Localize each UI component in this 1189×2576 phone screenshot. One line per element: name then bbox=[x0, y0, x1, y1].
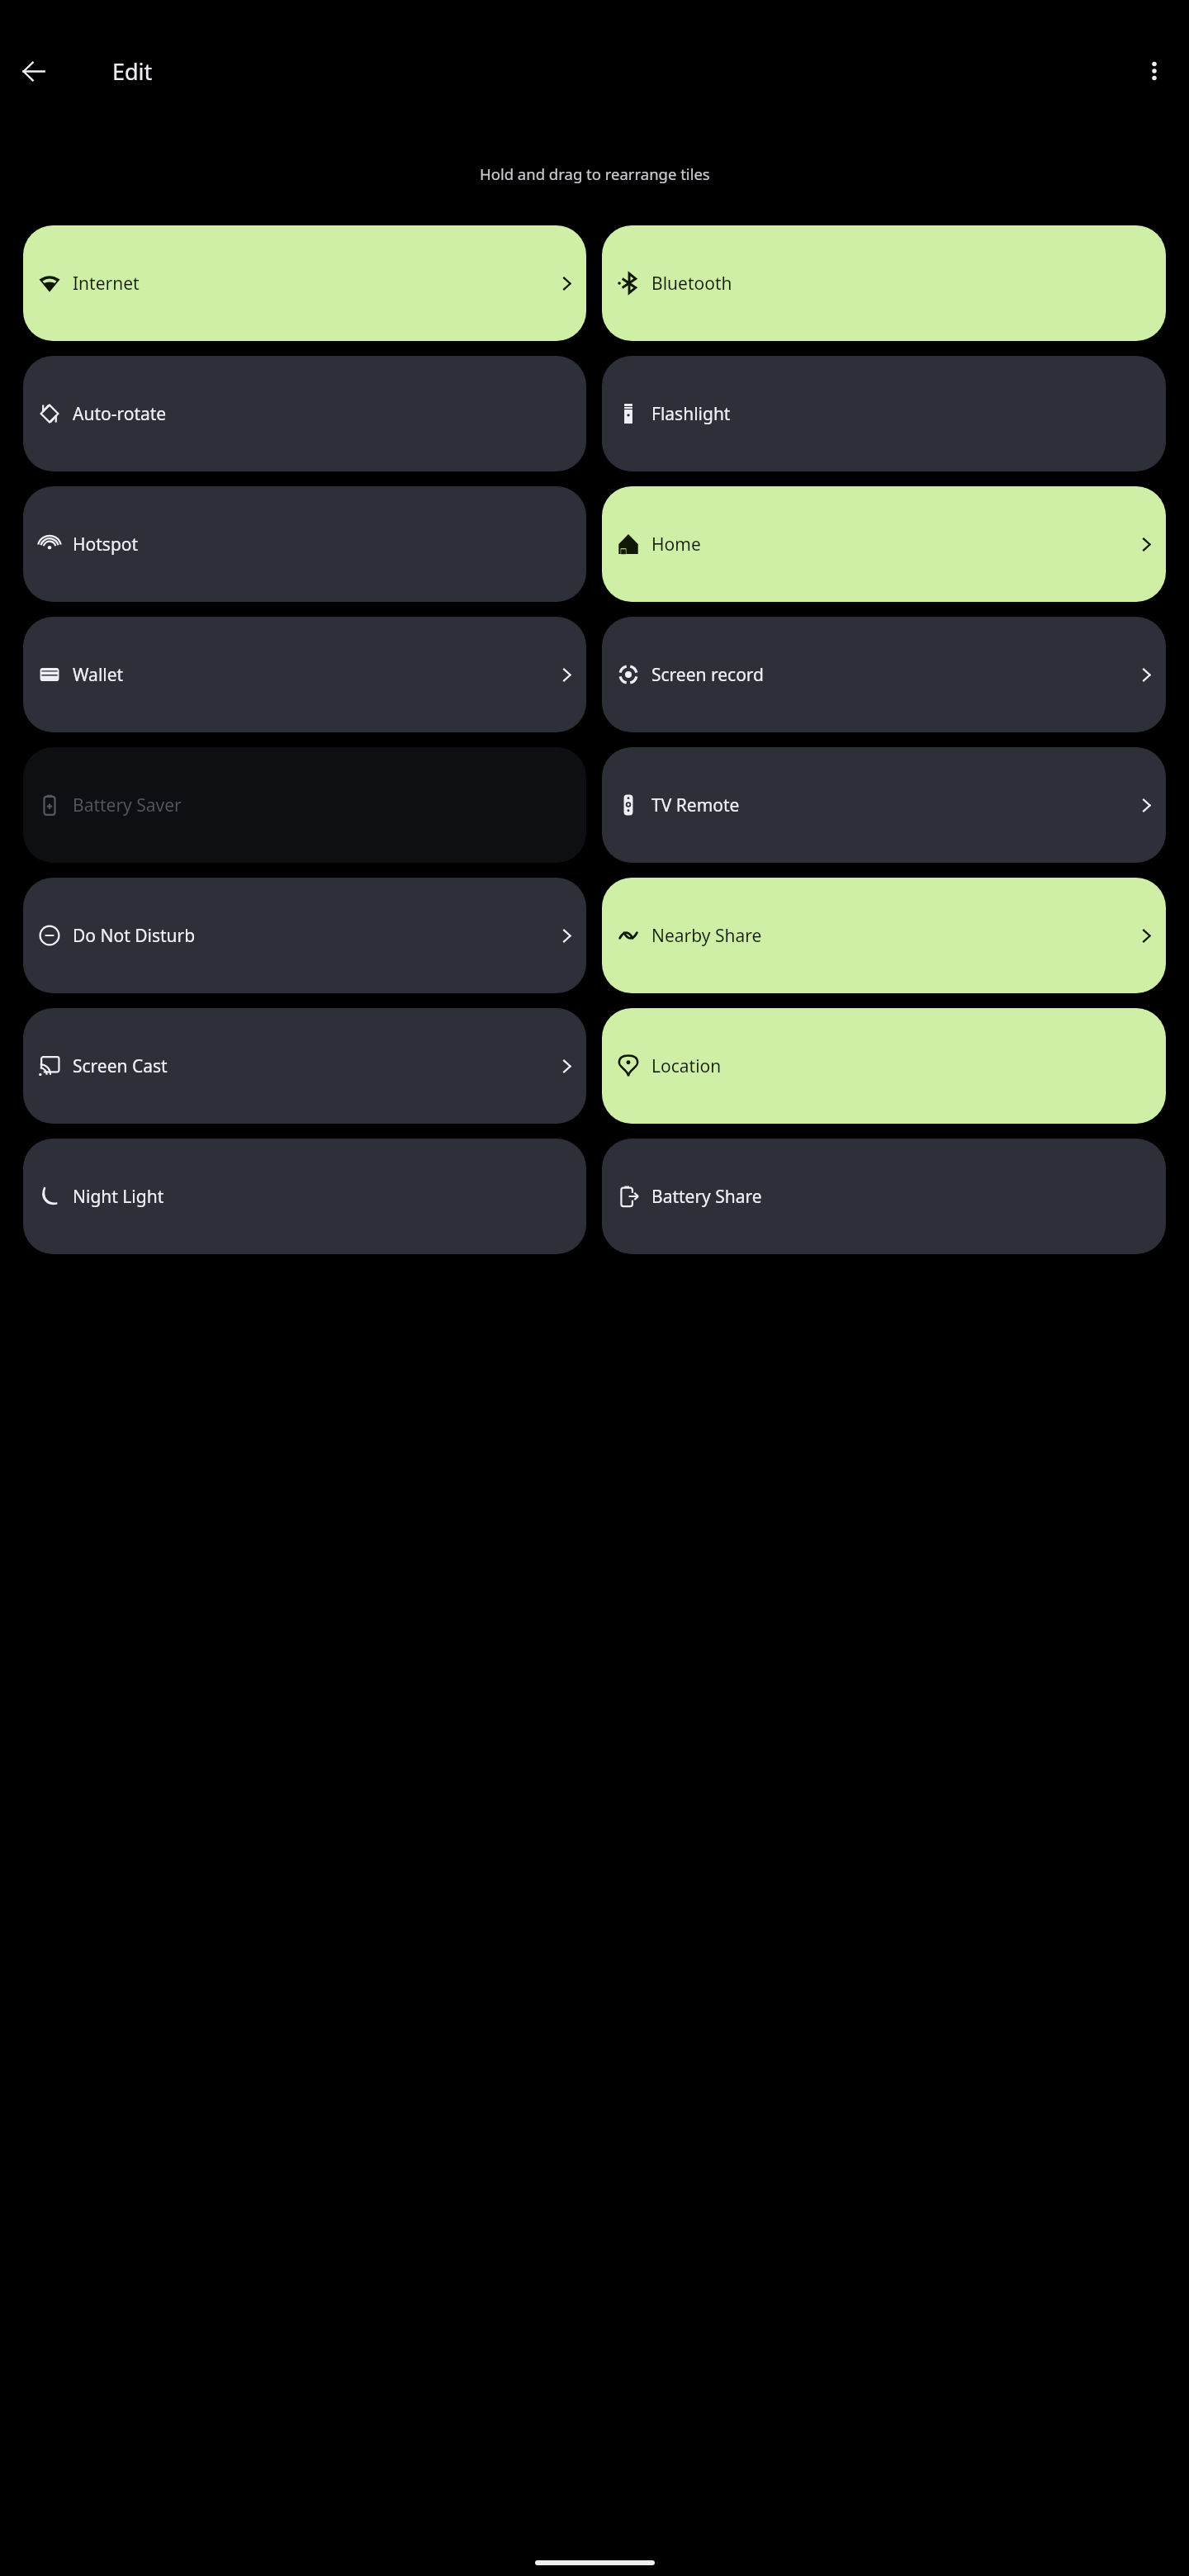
staticText: Edit bbox=[112, 56, 153, 87]
button[interactable]: Screen Cast bbox=[23, 1008, 586, 1124]
button[interactable]: Bluetooth bbox=[602, 225, 1166, 341]
staticText: Auto-rotate bbox=[73, 402, 560, 426]
button[interactable]: Internet bbox=[23, 225, 586, 341]
staticText: Home bbox=[651, 533, 1139, 556]
staticText: Night Light bbox=[73, 1185, 560, 1209]
button[interactable]: Battery Share bbox=[602, 1139, 1166, 1254]
button[interactable]: Home bbox=[602, 486, 1166, 602]
staticText: Internet bbox=[73, 272, 560, 296]
staticText: Hotspot bbox=[73, 533, 560, 556]
button[interactable]: Hotspot bbox=[23, 486, 586, 602]
staticText: Bluetooth bbox=[651, 272, 1139, 296]
staticText: Screen Cast bbox=[73, 1054, 560, 1078]
button[interactable]: Wallet bbox=[23, 617, 586, 732]
button[interactable]: Auto-rotate bbox=[23, 356, 586, 471]
staticText: Battery Saver bbox=[73, 793, 560, 817]
button[interactable]: Back bbox=[10, 48, 56, 94]
staticText: Wallet bbox=[73, 663, 560, 687]
button[interactable]: Do Not Disturb bbox=[23, 878, 586, 993]
staticText: Flashlight bbox=[651, 402, 1139, 426]
staticText: TV Remote bbox=[651, 793, 1139, 817]
staticText: Nearby Share bbox=[651, 924, 1139, 948]
staticText: Do Not Disturb bbox=[73, 924, 560, 948]
staticText: Screen record bbox=[651, 663, 1139, 687]
button[interactable]: Battery Saver bbox=[23, 747, 586, 863]
button[interactable]: Night Light bbox=[23, 1139, 586, 1254]
button[interactable]: Screen record bbox=[602, 617, 1166, 732]
button[interactable]: Nearby Share bbox=[602, 878, 1166, 993]
button[interactable]: Flashlight bbox=[602, 356, 1166, 471]
button[interactable]: TV Remote bbox=[602, 747, 1166, 863]
staticText: Battery Share bbox=[651, 1185, 1139, 1209]
staticText: Location bbox=[651, 1054, 1139, 1078]
button[interactable]: Location bbox=[602, 1008, 1166, 1124]
button[interactable]: More options bbox=[1131, 48, 1177, 94]
staticText: Hold and drag to rearrange tiles bbox=[480, 163, 710, 184]
